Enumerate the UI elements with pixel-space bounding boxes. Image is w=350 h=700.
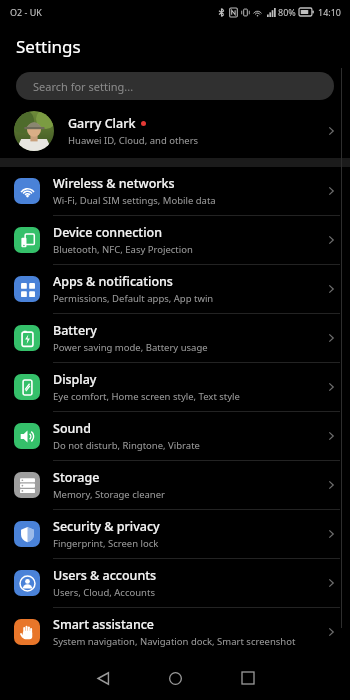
staticText: Device connection: [53, 224, 162, 241]
staticText: Memory, Storage cleaner: [53, 488, 165, 501]
button[interactable]: Home: [160, 663, 190, 693]
staticText: Wireless & networks: [53, 175, 175, 192]
staticText: Huawei ID, Cloud, and others: [68, 134, 199, 147]
staticText: Power saving mode, Battery usage: [53, 341, 208, 354]
button[interactable]: Device connection: [0, 216, 350, 264]
staticText: Display: [53, 371, 97, 388]
staticText: Battery: [53, 322, 97, 339]
staticText: Smart assistance: [53, 616, 155, 633]
staticText: Bluetooth, NFC, Easy Projection: [53, 243, 193, 256]
button[interactable]: Battery: [0, 314, 350, 362]
staticText: Garry Clark: [68, 115, 136, 132]
button[interactable]: Smart assistance: [0, 608, 350, 656]
button[interactable]: Wireless & networks: [0, 167, 350, 215]
button[interactable]: Sound: [0, 412, 350, 460]
staticText: Eye comfort, Home screen style, Text sty…: [53, 390, 240, 403]
button[interactable]: Display: [0, 363, 350, 411]
staticText: Apps & notifications: [53, 273, 173, 290]
staticText: O2 - UK: [10, 6, 42, 18]
staticText: Wi-Fi, Dual SIM settings, Mobile data: [53, 194, 216, 207]
button[interactable]: Recents: [233, 663, 263, 693]
staticText: Storage: [53, 469, 100, 486]
staticText: Do not disturb, Ringtone, Vibrate: [53, 439, 200, 452]
staticText: Settings: [16, 35, 81, 58]
staticText: 14:10: [318, 6, 342, 18]
staticText: Search for setting...: [33, 79, 134, 94]
staticText: Sound: [53, 420, 91, 437]
staticText: System navigation, Navigation dock, Smar…: [53, 635, 296, 648]
staticText: Security & privacy: [53, 518, 160, 535]
staticText: Permissions, Default apps, App twin: [53, 292, 214, 305]
button[interactable]: Users & accounts: [0, 559, 350, 607]
button[interactable]: Back: [88, 663, 118, 693]
button[interactable]: Search for setting: [16, 72, 334, 100]
button[interactable]: Security & privacy: [0, 510, 350, 558]
staticText: Users & accounts: [53, 567, 157, 584]
button[interactable]: Apps & notifications: [0, 265, 350, 313]
staticText: Fingerprint, Screen lock: [53, 537, 159, 550]
button[interactable]: Storage: [0, 461, 350, 509]
button[interactable]: Garry Clark: [0, 104, 350, 158]
staticText: Users, Cloud, Accounts: [53, 586, 155, 599]
staticText: 80%: [278, 6, 296, 18]
